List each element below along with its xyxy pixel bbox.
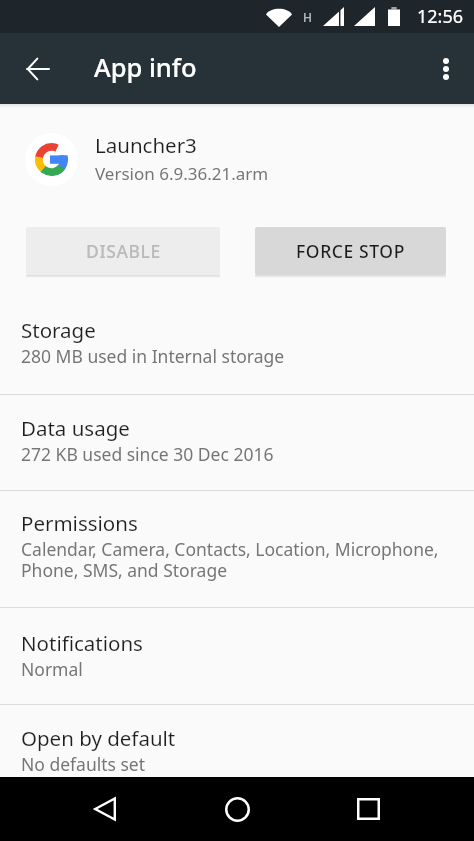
staticText: 280 MB used in Internal storage xyxy=(21,344,285,368)
staticText: Normal xyxy=(21,657,83,681)
button[interactable]: FORCE STOP xyxy=(255,227,446,275)
staticText: 12:56 xyxy=(417,4,464,29)
staticText: Launcher3 xyxy=(95,131,197,159)
staticText: H xyxy=(303,9,312,25)
button[interactable]: DISABLE xyxy=(26,227,220,275)
staticText: Permissions xyxy=(21,509,138,537)
staticText: DISABLE xyxy=(86,239,161,263)
staticText: Calendar, Camera, Contacts, Location, Mi… xyxy=(21,537,439,582)
button[interactable]: Navigate up xyxy=(15,46,60,91)
button[interactable]: Open by default xyxy=(0,705,474,801)
staticText: No defaults set xyxy=(21,752,146,776)
button[interactable]: Notifications xyxy=(0,608,474,704)
button[interactable]: Permissions xyxy=(0,491,474,607)
staticText: Data usage xyxy=(21,414,130,442)
button[interactable]: Home xyxy=(213,785,261,833)
staticText: FORCE STOP xyxy=(296,239,405,263)
button[interactable]: More options xyxy=(423,46,468,91)
staticText: Notifications xyxy=(21,629,143,657)
staticText: Storage xyxy=(21,316,96,344)
button[interactable]: Back xyxy=(81,785,129,833)
button[interactable]: Recent apps xyxy=(344,785,392,833)
staticText: Open by default xyxy=(21,724,176,752)
button[interactable]: Data usage xyxy=(0,395,474,490)
staticText: 272 KB used since 30 Dec 2016 xyxy=(21,442,274,466)
button[interactable]: Storage xyxy=(0,290,474,394)
staticText: App info xyxy=(94,50,197,85)
staticText: Version 6.9.36.21.arm xyxy=(95,162,269,185)
